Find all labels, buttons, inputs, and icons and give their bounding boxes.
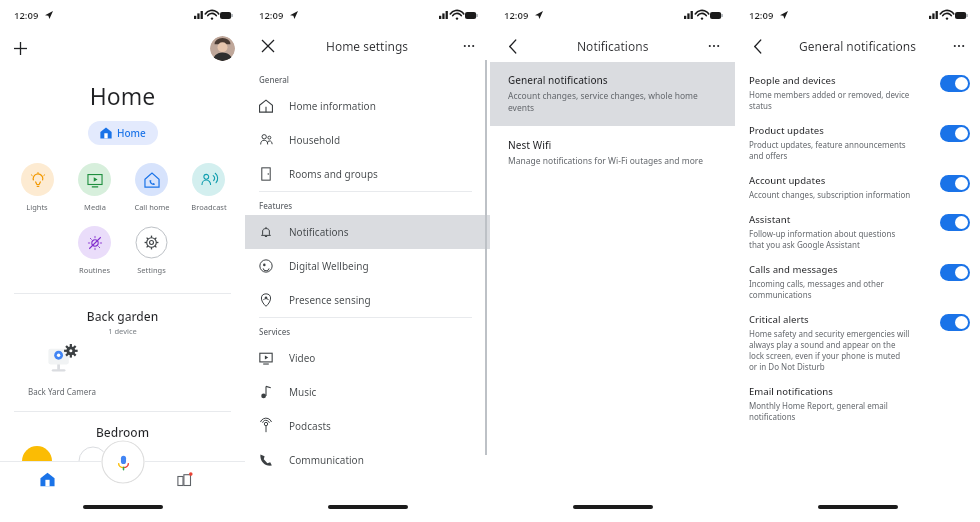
staticText: Settings — [137, 265, 166, 275]
button[interactable]: Rooms and groups — [245, 157, 490, 191]
staticText: General notifications — [799, 38, 917, 54]
button[interactable]: Email notifications — [735, 379, 980, 429]
staticText: Presence sensing — [289, 293, 371, 307]
staticText: Follow-up information about questions th… — [749, 228, 896, 250]
button[interactable]: Broadcast — [180, 161, 237, 214]
staticText: Notifications — [289, 225, 349, 239]
staticText: Features — [259, 200, 293, 211]
button[interactable]: Product updates toggle — [940, 125, 970, 142]
button[interactable]: Critical alerts toggle — [940, 314, 970, 331]
button[interactable]: Nest Wifi — [490, 126, 735, 179]
button[interactable]: More options — [948, 35, 970, 57]
staticText: Assistant — [749, 213, 791, 226]
button[interactable]: Add — [6, 34, 34, 62]
button[interactable]: People and devices — [735, 68, 980, 118]
staticText: Music — [289, 385, 317, 399]
staticText: Call home — [134, 202, 170, 212]
staticText: Account changes, service changes, whole … — [508, 90, 698, 114]
staticText: 12:09 — [259, 9, 284, 22]
staticText: Broadcast — [191, 202, 227, 212]
button[interactable]: Home tab — [34, 466, 60, 492]
button[interactable]: More options — [458, 35, 480, 57]
button[interactable]: People and devices toggle — [940, 75, 970, 92]
button[interactable]: More options — [703, 35, 725, 57]
button[interactable]: Calls and messages toggle — [940, 264, 970, 281]
staticText: Bedroom — [0, 424, 245, 440]
button[interactable]: Routines — [66, 224, 123, 277]
staticText: Rooms and groups — [289, 167, 378, 181]
staticText: Product updates — [749, 124, 824, 137]
staticText: Calls and messages — [749, 263, 838, 276]
button[interactable]: Call home — [123, 161, 180, 214]
staticText: 12:09 — [14, 9, 39, 22]
staticText: Home — [117, 126, 146, 140]
staticText: Media — [84, 202, 106, 212]
staticText: Incoming calls, messages and other commu… — [749, 278, 884, 300]
button[interactable]: Communication — [245, 443, 490, 477]
staticText: Critical alerts — [749, 313, 809, 326]
button[interactable]: Account updates toggle — [940, 175, 970, 192]
button[interactable]: General notifications — [490, 62, 735, 126]
staticText: Home safety and security emergencies wil… — [749, 328, 910, 372]
staticText: Product updates, feature announcements a… — [749, 139, 906, 161]
button[interactable]: Account updates — [735, 168, 980, 207]
staticText: Back garden — [0, 308, 245, 324]
button[interactable]: Assistant — [735, 207, 980, 257]
staticText: Services — [259, 326, 291, 337]
staticText: Communication — [289, 453, 364, 467]
button[interactable]: Product updates — [735, 118, 980, 168]
button[interactable]: Lights — [8, 161, 66, 214]
staticText: Account changes, subscription informatio… — [749, 189, 911, 200]
button[interactable]: Account — [210, 36, 235, 61]
button[interactable]: Assistant toggle — [940, 214, 970, 231]
staticText: Account updates — [749, 174, 826, 187]
button[interactable]: Back Yard Camera — [22, 344, 102, 397]
staticText: Notifications — [577, 38, 649, 54]
staticText: 1 device — [0, 326, 245, 336]
staticText: Nest Wifi — [508, 138, 552, 152]
staticText: Monthly Home Report, general email notif… — [749, 400, 932, 422]
button[interactable]: Video — [245, 341, 490, 375]
staticText: 12:09 — [749, 9, 774, 22]
button[interactable]: Podcasts — [245, 409, 490, 443]
button[interactable]: Presence sensing — [245, 283, 490, 317]
button[interactable]: Notifications — [245, 215, 490, 249]
button[interactable]: Critical alerts — [735, 307, 980, 379]
button[interactable]: Media — [66, 161, 123, 214]
staticText: 12:09 — [504, 9, 529, 22]
staticText: Video — [289, 351, 316, 365]
staticText: Manage notifications for Wi-Fi outages a… — [508, 155, 703, 167]
staticText: Home members added or removed, device st… — [749, 89, 910, 111]
button[interactable]: Settings — [123, 224, 180, 277]
staticText: Home information — [289, 99, 376, 113]
button[interactable]: Digital Wellbeing — [245, 249, 490, 283]
button[interactable]: Google Assistant — [101, 440, 145, 484]
button[interactable]: Back — [747, 35, 769, 57]
staticText: Podcasts — [289, 419, 331, 433]
staticText: Email notifications — [749, 385, 833, 398]
staticText: General — [259, 74, 289, 85]
staticText: Home settings — [326, 38, 409, 54]
button[interactable]: Home information — [245, 89, 490, 123]
staticText: Lights — [26, 202, 48, 212]
staticText: Routines — [79, 265, 110, 275]
staticText: Home — [0, 80, 245, 111]
staticText: Back Yard Camera — [28, 386, 96, 397]
staticText: General notifications — [508, 73, 608, 87]
button[interactable]: Feed tab — [171, 466, 197, 492]
staticText: Household — [289, 133, 341, 147]
button[interactable]: Household — [245, 123, 490, 157]
staticText: People and devices — [749, 74, 836, 87]
button[interactable]: Calls and messages — [735, 257, 980, 307]
button[interactable]: Back — [502, 35, 524, 57]
button[interactable]: Home — [88, 121, 158, 145]
button[interactable]: Music — [245, 375, 490, 409]
button[interactable]: Close — [257, 35, 279, 57]
staticText: Digital Wellbeing — [289, 259, 369, 273]
